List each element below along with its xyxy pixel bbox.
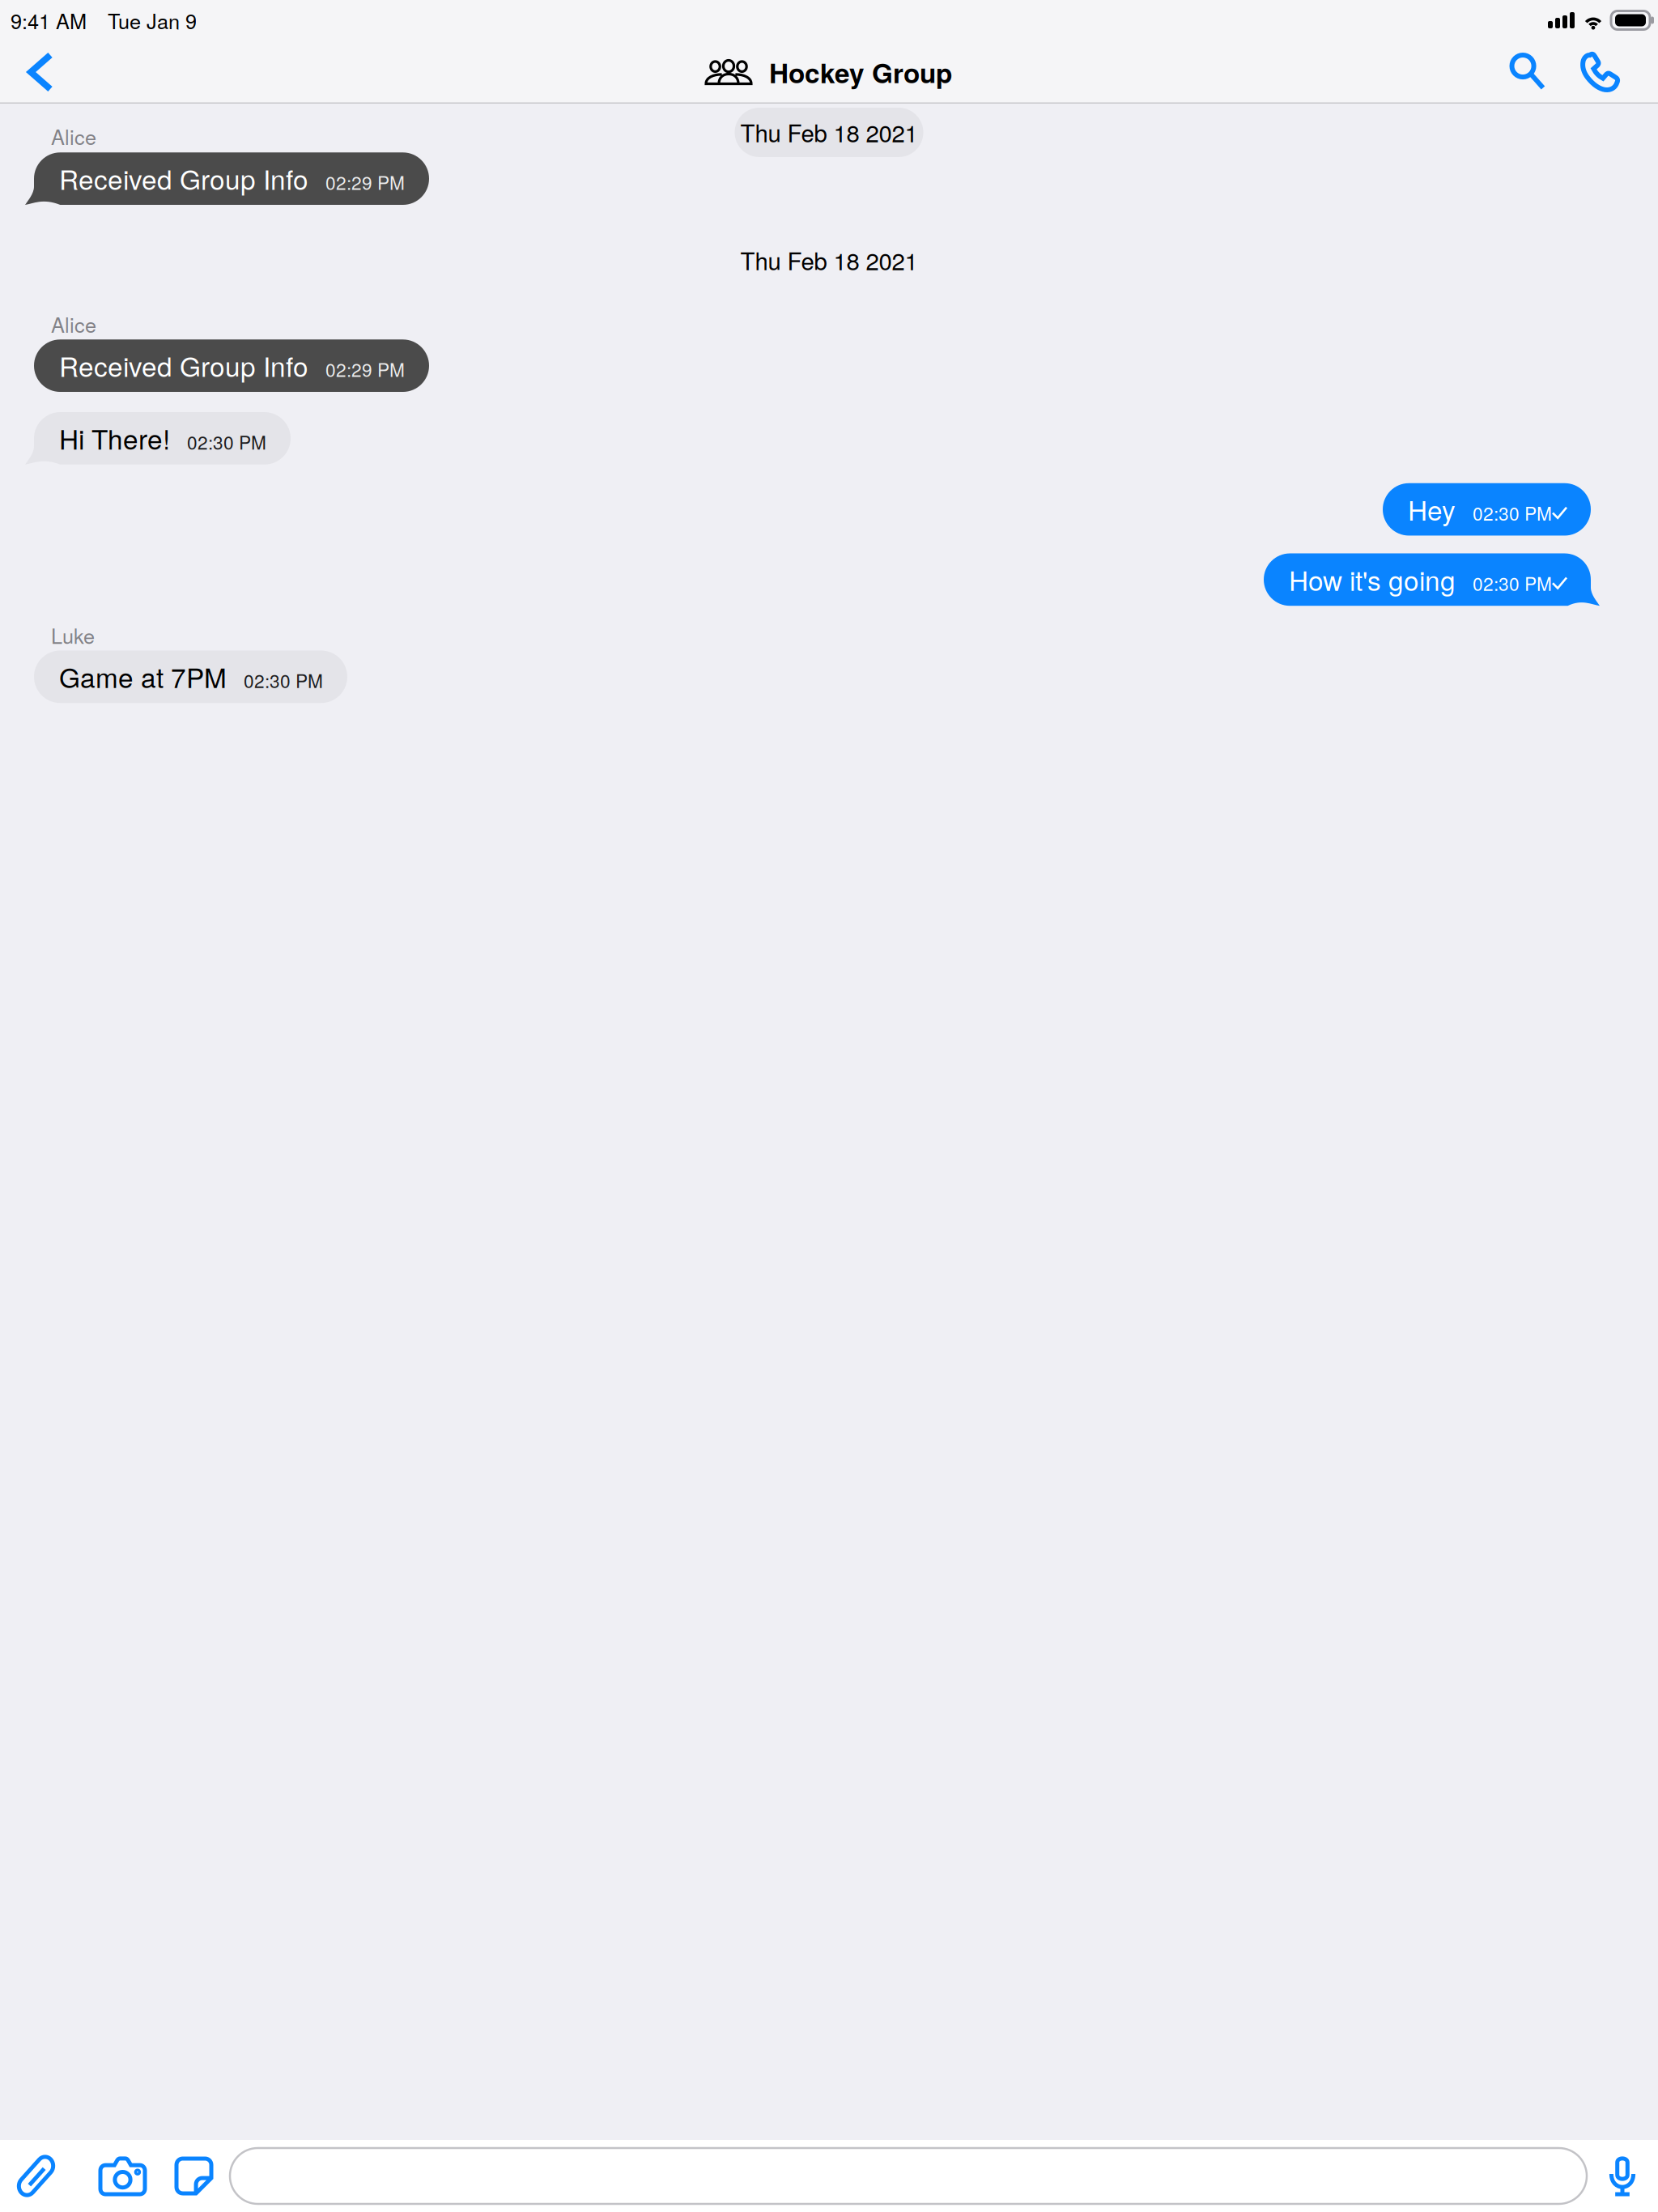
staticText: 02:30 PM bbox=[1473, 570, 1552, 596]
button[interactable]: Received Group Info bbox=[0, 339, 429, 392]
button[interactable]: Camera bbox=[85, 2140, 160, 2212]
button[interactable]: How it's going bbox=[1264, 553, 1658, 606]
staticText: Thu Feb 18 2021 bbox=[740, 243, 918, 277]
button[interactable]: Back bbox=[0, 42, 74, 102]
button[interactable]: Received Group Info bbox=[0, 152, 429, 205]
staticText: Thu Feb 18 2021 bbox=[740, 115, 918, 149]
staticText: Alice bbox=[51, 121, 96, 151]
staticText: 02:30 PM bbox=[187, 429, 266, 455]
button[interactable]: Record voice message bbox=[1587, 2140, 1658, 2212]
staticText: Hey bbox=[1408, 490, 1456, 528]
staticText: Received Group Info bbox=[59, 346, 308, 385]
staticText: 02:29 PM bbox=[325, 356, 405, 382]
staticText: How it's going bbox=[1289, 560, 1456, 599]
button[interactable]: Game at 7PM bbox=[0, 651, 347, 703]
staticText: 02:30 PM bbox=[1473, 500, 1552, 526]
button[interactable]: Stickers bbox=[160, 2141, 227, 2211]
staticText: 02:30 PM bbox=[244, 667, 323, 693]
staticText: Game at 7PM bbox=[59, 657, 227, 696]
button[interactable]: Call bbox=[1563, 41, 1636, 103]
button[interactable]: Hey bbox=[1383, 483, 1658, 536]
staticText: Received Group Info bbox=[59, 159, 308, 198]
button[interactable]: Hi There! bbox=[0, 412, 291, 465]
staticText: 9:41 AM bbox=[11, 6, 87, 35]
button[interactable]: Attach file bbox=[0, 2140, 85, 2212]
button[interactable]: Search bbox=[1493, 41, 1563, 103]
staticText: 02:29 PM bbox=[325, 169, 405, 195]
staticText: Tue Jan 9 bbox=[108, 6, 197, 35]
staticText: Hockey Group bbox=[769, 53, 952, 91]
staticText: Luke bbox=[51, 620, 95, 650]
staticText: Hi There! bbox=[59, 419, 170, 457]
button[interactable]: Message input bbox=[230, 2148, 1587, 2204]
staticText: Alice bbox=[51, 309, 96, 339]
